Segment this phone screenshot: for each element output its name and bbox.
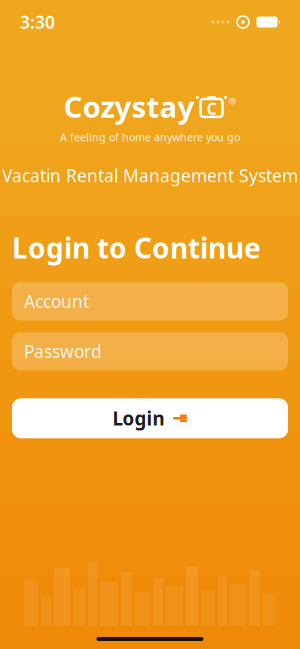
staticText: Login to Continue: [12, 229, 261, 266]
staticText: Cozystay: [63, 87, 194, 126]
staticText: ®: [228, 95, 236, 107]
staticText: Vacatin Rental Management System: [2, 164, 298, 187]
button[interactable]: Password: [12, 332, 288, 370]
staticText: Account: [24, 290, 89, 313]
staticText: 3:30: [20, 10, 55, 33]
staticText: C: [206, 98, 216, 119]
staticText: A feeling of home anywhere you go: [60, 130, 240, 144]
staticText: Password: [24, 340, 102, 363]
staticText: Login: [112, 406, 164, 431]
button[interactable]: Account: [12, 282, 288, 320]
button[interactable]: Login: [12, 398, 288, 438]
